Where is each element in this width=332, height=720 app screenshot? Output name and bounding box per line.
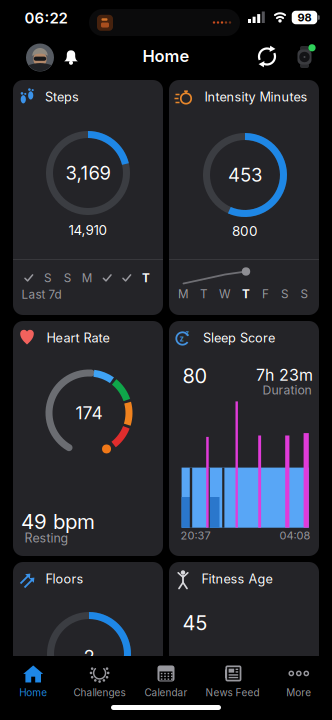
staticText: 800: [232, 223, 258, 239]
staticText: S: [300, 287, 308, 301]
button[interactable]: Heart Rate: [13, 321, 163, 556]
staticText: 14,910: [68, 222, 107, 238]
staticText: Challenges: [74, 686, 126, 699]
button[interactable]: Intensity Minutes: [169, 80, 319, 315]
button[interactable]: Notifications: [63, 47, 79, 65]
button[interactable]: News Feed: [199, 656, 266, 706]
staticText: Intensity Minutes: [204, 89, 307, 105]
staticText: Fitness Age: [201, 571, 272, 587]
staticText: 80: [182, 364, 207, 388]
staticText: S: [44, 271, 52, 285]
staticText: More: [286, 686, 311, 699]
staticText: 04:08: [279, 529, 310, 542]
staticText: 98: [297, 11, 311, 24]
staticText: Duration: [262, 383, 311, 397]
staticText: Resting: [24, 530, 68, 545]
staticText: 49 bpm: [21, 509, 95, 534]
staticText: Last 7d: [21, 287, 61, 302]
staticText: M: [82, 271, 93, 285]
staticText: T: [142, 271, 150, 285]
staticText: 7h 23m: [256, 365, 313, 385]
staticText: z: [185, 329, 189, 337]
button[interactable]: Sync: [256, 45, 278, 67]
staticText: z: [179, 334, 184, 343]
button[interactable]: Calendar: [133, 656, 199, 706]
staticText: Sleep Score: [203, 330, 275, 346]
staticText: 45: [182, 611, 207, 635]
staticText: M: [178, 287, 189, 301]
staticText: 2: [83, 646, 94, 668]
staticText: News Feed: [205, 686, 259, 699]
button[interactable]: More: [266, 656, 332, 706]
staticText: 453: [228, 164, 262, 186]
staticText: S: [281, 287, 289, 301]
staticText: W: [219, 287, 231, 301]
button[interactable]: Profile: [26, 43, 54, 71]
button[interactable]: Connected device: [295, 45, 316, 69]
staticText: Home: [19, 686, 47, 699]
staticText: T: [200, 287, 208, 301]
staticText: F: [262, 287, 269, 301]
button[interactable]: Floors: [13, 562, 163, 656]
staticText: S: [64, 271, 72, 285]
staticText: 20:37: [180, 529, 210, 542]
staticText: Steps: [45, 89, 79, 105]
button[interactable]: Home: [0, 656, 66, 706]
staticText: 3,169: [65, 162, 110, 184]
staticText: Floors: [45, 571, 83, 587]
staticText: Home: [142, 46, 189, 66]
staticText: Heart Rate: [46, 330, 109, 346]
staticText: 174: [75, 402, 102, 424]
staticText: Calendar: [144, 686, 187, 699]
staticText: 06:22: [24, 9, 67, 27]
button[interactable]: z: [169, 321, 319, 556]
button[interactable]: Challenges: [66, 656, 133, 706]
staticText: T: [242, 287, 250, 301]
button[interactable]: Fitness Age: [169, 562, 319, 656]
button[interactable]: Steps: [13, 80, 163, 315]
